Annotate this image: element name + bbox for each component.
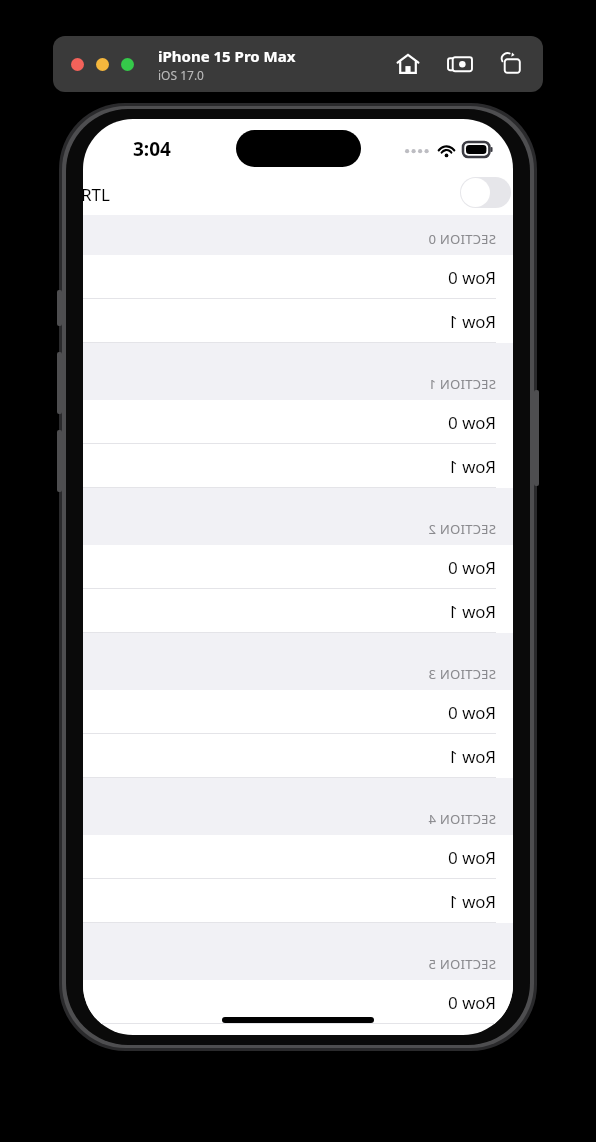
- staticText: Row 1: [447, 600, 496, 623]
- button[interactable]: [121, 58, 134, 71]
- staticText: Row 1: [447, 890, 496, 913]
- staticText: SECTION 1: [428, 375, 496, 393]
- staticText: Row 1: [447, 455, 496, 478]
- staticText: Row 1: [447, 310, 496, 333]
- button[interactable]: Row 1: [83, 734, 513, 778]
- button[interactable]: Row 0: [83, 690, 513, 734]
- staticText: SECTION 3: [428, 665, 496, 683]
- staticText: Row 0: [447, 846, 496, 869]
- staticText: RTL: [83, 183, 110, 206]
- button[interactable]: Row 1: [83, 879, 513, 923]
- staticText: 3:04: [133, 136, 171, 162]
- staticText: SECTION 2: [428, 520, 496, 538]
- button[interactable]: Row 0: [83, 400, 513, 444]
- button[interactable]: RTL switch: [460, 177, 511, 208]
- button[interactable]: Rotate: [499, 51, 525, 77]
- staticText: Row 0: [447, 411, 496, 434]
- staticText: SECTION 0: [428, 230, 496, 248]
- button[interactable]: [96, 58, 109, 71]
- button[interactable]: Row 1: [83, 444, 513, 488]
- button[interactable]: Row 0: [83, 545, 513, 589]
- staticText: SECTION 4: [428, 810, 496, 828]
- staticText: Row 1: [447, 745, 496, 768]
- button[interactable]: RTL: [83, 173, 513, 215]
- button[interactable]: Row 0: [83, 980, 513, 1024]
- button[interactable]: Row 0: [83, 835, 513, 879]
- staticText: Row 0: [447, 701, 496, 724]
- staticText: Row 0: [447, 556, 496, 579]
- button[interactable]: Row 1: [83, 589, 513, 633]
- staticText: iPhone 15 Pro Max: [158, 46, 296, 66]
- button[interactable]: Home: [395, 51, 421, 77]
- staticText: SECTION 5: [428, 955, 496, 973]
- button[interactable]: Row 0: [83, 255, 513, 299]
- staticText: Row 0: [447, 991, 496, 1014]
- button[interactable]: [71, 58, 84, 71]
- staticText: Row 0: [447, 266, 496, 289]
- button[interactable]: Screenshot: [447, 51, 473, 77]
- staticText: iOS 17.0: [158, 67, 204, 83]
- button[interactable]: Row 1: [83, 299, 513, 343]
